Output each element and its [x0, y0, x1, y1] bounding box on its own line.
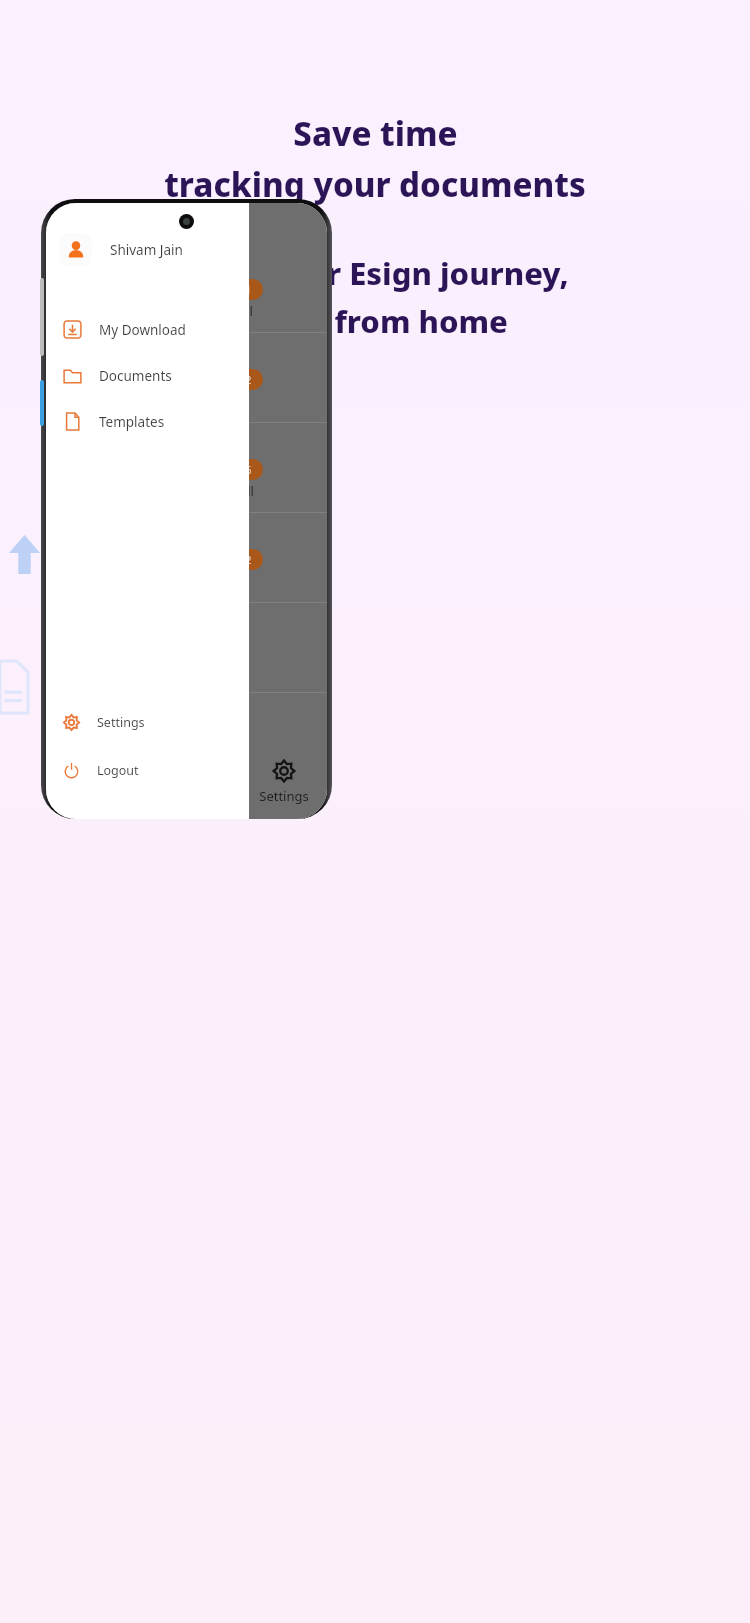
button[interactable]: Templates: [46, 404, 249, 439]
staticText: Save time: [293, 111, 458, 156]
staticText: ents will: [204, 482, 254, 500]
staticText: Start your Esign journey,: [182, 252, 569, 294]
button[interactable]: My Download: [46, 312, 249, 347]
staticText: My Download: [99, 321, 186, 339]
staticText: tracking your documents: [164, 162, 586, 207]
staticText: Right from home: [242, 300, 508, 342]
staticText: 1072: [226, 552, 252, 567]
button[interactable]: Settings: [46, 706, 249, 739]
button[interactable]: Settings tab: [253, 758, 315, 805]
staticText: 2152: [226, 372, 252, 387]
button[interactable]: Documents: [46, 358, 249, 393]
button[interactable]: Shivam Jain: [46, 228, 249, 271]
staticText: Templates: [99, 413, 165, 431]
staticText: 1421: [226, 282, 252, 297]
staticText: 2406: [226, 462, 252, 477]
staticText: Shivam Jain: [110, 241, 183, 259]
staticText: Settings: [259, 787, 309, 805]
button[interactable]: Logout: [46, 754, 249, 787]
staticText: Documents: [99, 367, 172, 385]
staticText: Logout: [97, 762, 139, 779]
staticText: ture will: [204, 302, 253, 320]
staticText: Settings: [97, 714, 145, 731]
